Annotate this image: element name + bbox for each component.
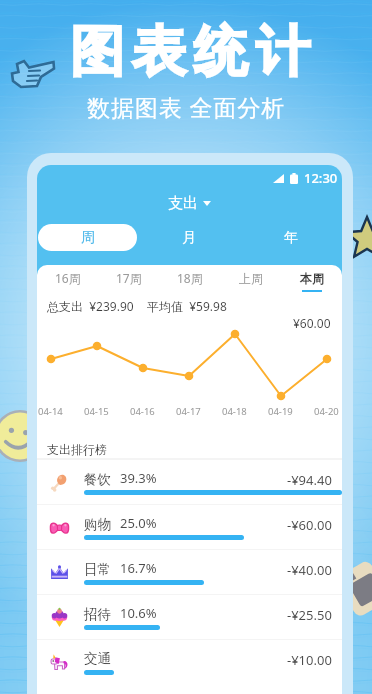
button[interactable]: 月: [139, 224, 239, 251]
staticText: -¥40.00: [287, 561, 332, 579]
staticText: 周: [81, 229, 95, 247]
button[interactable]: 18周: [159, 265, 220, 297]
staticText: 交通: [84, 650, 111, 667]
button[interactable]: 招待: [37, 594, 342, 639]
staticText: 04-15: [84, 405, 110, 418]
staticText: -¥94.40: [287, 471, 332, 489]
staticText: 图表统计: [70, 18, 318, 86]
staticText: 25.0%: [120, 514, 157, 532]
button[interactable]: 年: [241, 224, 341, 251]
button[interactable]: 餐饮: [37, 459, 342, 504]
staticText: 月: [182, 229, 196, 247]
staticText: 支出排行榜: [47, 442, 107, 457]
button[interactable]: 上周: [220, 265, 281, 297]
staticText: 招待: [84, 606, 111, 623]
staticText: -¥10.00: [287, 651, 332, 669]
staticText: 年: [284, 229, 298, 247]
staticText: -¥60.00: [287, 516, 332, 534]
staticText: 16.7%: [120, 559, 157, 577]
staticText: 39.3%: [120, 469, 157, 487]
staticText: 10.6%: [120, 604, 157, 622]
staticText: 17周: [116, 270, 142, 286]
button[interactable]: 本周: [281, 265, 342, 297]
staticText: 数据图表 全面分析: [87, 91, 286, 122]
staticText: 平均值 ¥59.98: [147, 298, 227, 314]
staticText: 本周: [300, 271, 324, 286]
button[interactable]: 支出: [162, 192, 217, 214]
button[interactable]: 购物: [37, 504, 342, 549]
staticText: 04-16: [130, 405, 156, 418]
button[interactable]: 周: [38, 224, 137, 251]
staticText: 支出: [168, 194, 198, 212]
button[interactable]: 交通: [37, 639, 342, 684]
staticText: 04-20: [314, 405, 340, 418]
staticText: 日常: [84, 561, 111, 578]
staticText: 总支出 ¥239.90: [47, 298, 134, 314]
staticText: 18周: [177, 270, 203, 286]
staticText: 购物: [84, 516, 111, 533]
button[interactable]: 日常: [37, 549, 342, 594]
staticText: -¥25.50: [287, 606, 332, 624]
staticText: 04-18: [222, 405, 248, 418]
staticText: 12:30: [304, 169, 338, 187]
staticText: 04-17: [176, 405, 202, 418]
staticText: 04-14: [38, 405, 64, 418]
staticText: 04-19: [268, 405, 294, 418]
staticText: 上周: [239, 271, 263, 286]
staticText: 餐饮: [84, 471, 111, 488]
staticText: ¥60.00: [293, 315, 331, 331]
button[interactable]: 17周: [98, 265, 159, 297]
staticText: 16周: [55, 270, 81, 286]
button[interactable]: 16周: [37, 265, 98, 297]
